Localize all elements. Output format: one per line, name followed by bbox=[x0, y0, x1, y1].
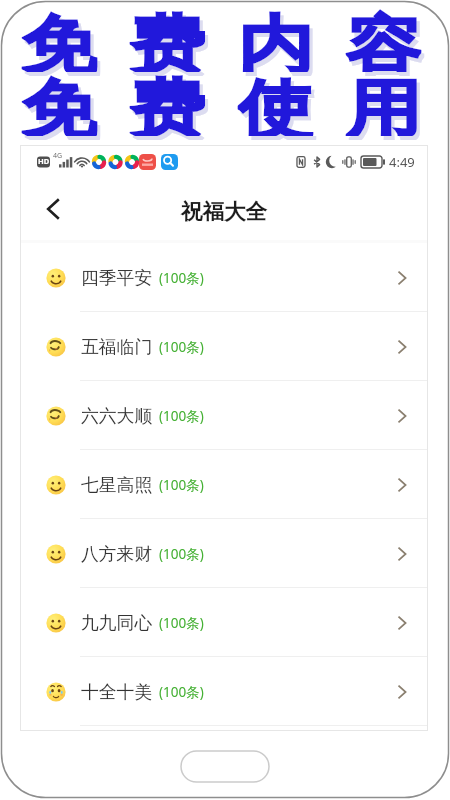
staticText: 使 bbox=[241, 74, 316, 140]
staticText: 4G bbox=[53, 151, 63, 161]
staticText: (100条) bbox=[159, 269, 204, 287]
staticText: 费 bbox=[133, 10, 208, 76]
button[interactable]: 十全十美 bbox=[20, 657, 428, 726]
staticText: 容 bbox=[346, 6, 421, 72]
staticText: (100条) bbox=[159, 338, 204, 356]
staticText: 4:49 bbox=[389, 153, 415, 171]
button[interactable]: Back bbox=[30, 186, 76, 232]
staticText: (100条) bbox=[159, 614, 204, 632]
staticText: 免 bbox=[22, 70, 97, 136]
staticText: 用 bbox=[349, 74, 424, 140]
staticText: 免 bbox=[25, 10, 100, 76]
staticText: 五福临门 bbox=[81, 336, 153, 358]
staticText: 容 bbox=[349, 10, 424, 76]
button[interactable]: 五福临门 bbox=[20, 312, 428, 381]
button[interactable]: 四季平安 bbox=[20, 243, 428, 312]
staticText: 免 bbox=[22, 6, 97, 72]
staticText: 用 bbox=[346, 70, 421, 136]
button[interactable]: 七星高照 bbox=[20, 450, 428, 519]
staticText: (100条) bbox=[159, 545, 204, 563]
staticText: 免 bbox=[25, 74, 100, 140]
staticText: HD bbox=[38, 156, 50, 166]
button[interactable]: 九九同心 bbox=[20, 588, 428, 657]
staticText: (100条) bbox=[159, 407, 204, 425]
staticText: (100条) bbox=[159, 476, 204, 494]
staticText: 内 bbox=[238, 6, 313, 72]
staticText: 七星高照 bbox=[81, 474, 153, 496]
staticText: 四季平安 bbox=[81, 267, 153, 289]
staticText: 祝福大全 bbox=[181, 198, 267, 225]
button[interactable]: 六六大顺 bbox=[20, 381, 428, 450]
staticText: (100条) bbox=[159, 683, 204, 701]
staticText: 九九同心 bbox=[81, 612, 153, 634]
staticText: 费 bbox=[130, 70, 205, 136]
staticText: 十全十美 bbox=[81, 681, 153, 703]
button[interactable]: 八方来财 bbox=[20, 519, 428, 588]
staticText: 六六大顺 bbox=[81, 405, 153, 427]
staticText: 费 bbox=[133, 74, 208, 140]
staticText: 八方来财 bbox=[81, 543, 153, 565]
staticText: 费 bbox=[130, 6, 205, 72]
staticText: 内 bbox=[241, 10, 316, 76]
staticText: 使 bbox=[238, 70, 313, 136]
